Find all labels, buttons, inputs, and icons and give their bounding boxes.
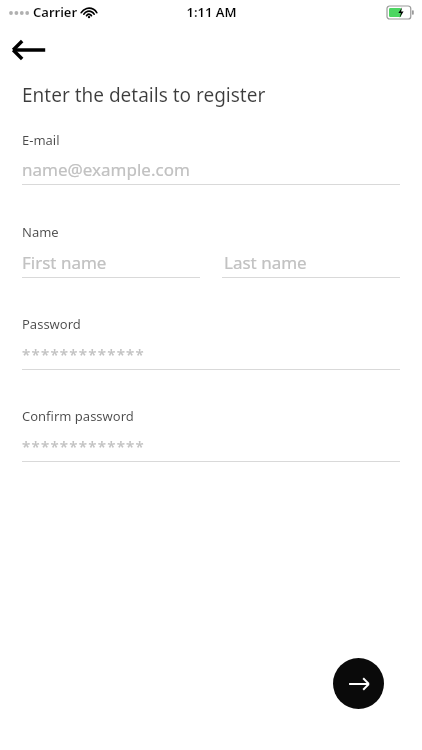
- staticText: Name: [22, 223, 59, 241]
- staticText: Carrier: [33, 3, 78, 21]
- staticText: name@example.com: [22, 158, 190, 181]
- staticText: Confirm password: [22, 407, 134, 425]
- staticText: First name: [22, 251, 107, 274]
- staticText: *************: [22, 344, 146, 364]
- staticText: Enter the details to register: [22, 82, 266, 108]
- staticText: Password: [22, 315, 81, 333]
- button[interactable]: Continue: [333, 658, 384, 709]
- staticText: E-mail: [22, 131, 60, 149]
- button[interactable]: Back: [6, 28, 52, 72]
- staticText: *************: [22, 436, 146, 456]
- staticText: Last name: [224, 251, 307, 274]
- staticText: 1:11 AM: [186, 3, 237, 21]
